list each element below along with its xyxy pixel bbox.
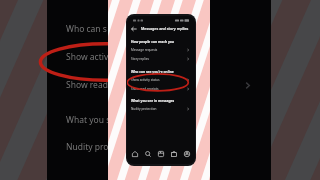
button[interactable]: Search	[141, 148, 154, 159]
button[interactable]: Show read receipts	[127, 84, 195, 93]
button[interactable]: Who can s	[47, 22, 108, 36]
staticText: Message requests	[131, 48, 158, 52]
button[interactable]: Story replies	[127, 54, 195, 63]
staticText: Messages and story replies	[141, 26, 189, 31]
staticText: Show read receipts	[131, 87, 159, 91]
button[interactable]: Home	[129, 148, 141, 159]
staticText: Who can see you're online	[131, 69, 174, 73]
button[interactable]: What you s	[47, 113, 108, 127]
staticText: How people can reach you	[131, 39, 175, 43]
staticText: Nudity protection	[131, 107, 157, 111]
staticText: Show activ	[66, 51, 108, 63]
button[interactable]: Message requests	[127, 45, 195, 54]
button[interactable]: Nudity prot	[47, 140, 108, 154]
button[interactable]: Shop	[167, 148, 180, 159]
button[interactable]: Show activity status	[127, 75, 195, 84]
staticText: Who can s	[66, 23, 107, 35]
button[interactable]: Back	[130, 25, 138, 33]
button[interactable]: Next	[241, 79, 254, 92]
staticText: Show read	[66, 79, 108, 91]
staticText: What you see in messages	[131, 98, 175, 102]
button[interactable]: Show read	[47, 78, 108, 92]
button[interactable]: Show activ	[47, 50, 108, 64]
button[interactable]: Reels	[154, 148, 167, 159]
staticText: Story replies	[131, 57, 150, 61]
staticText: Show activity status	[131, 78, 160, 82]
button[interactable]: Profile	[180, 148, 193, 159]
staticText: Nudity prot	[66, 141, 108, 153]
staticText: What you s	[66, 114, 108, 126]
button[interactable]: Nudity protection	[127, 104, 195, 113]
